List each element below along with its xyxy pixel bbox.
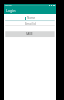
staticText: Name	[27, 16, 36, 20]
staticText: MyApp	[5, 4, 12, 6]
button[interactable]: Email id	[4, 22, 56, 26]
staticText: Email id	[25, 22, 36, 26]
staticText: SAVE	[26, 32, 33, 36]
button[interactable]: SAVE	[5, 31, 54, 37]
staticText: Login	[6, 8, 16, 13]
button[interactable]: Name	[4, 16, 56, 20]
